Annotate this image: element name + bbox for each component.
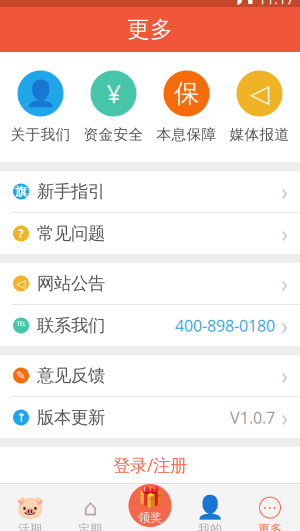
staticText: ◁ [250,79,269,108]
staticText: 新手指引 [37,181,105,202]
staticText: 旗 [15,184,27,199]
button[interactable]: 🐷 [0,488,60,531]
staticText: 关于我们 [10,125,70,143]
staticText: 意见反馈 [37,365,105,386]
staticText: 联系我们 [37,315,105,336]
staticText: › [281,360,288,390]
staticText: 网站公告 [37,273,105,294]
staticText: ▮ [247,0,254,5]
staticText: 👤 [196,495,224,521]
button[interactable]: 登录/注册 [0,447,300,483]
staticText: 版本更新 [37,407,105,428]
staticText: 👤 [24,79,56,108]
button[interactable]: ↑ [0,397,300,438]
button[interactable]: ¥ [77,63,150,150]
staticText: 11:17 [258,0,294,8]
staticText: 保 [174,78,199,109]
staticText: 400-898-0180 [175,315,275,336]
staticText: › [281,218,288,248]
staticText: 领奖 [138,510,162,525]
staticText: › [281,402,288,432]
staticText: 登录/注册 [113,453,187,476]
button[interactable]: ◁ [0,263,300,304]
button[interactable]: 👤 [180,488,240,531]
staticText: V1.0.7 [230,407,275,428]
staticText: 常见问题 [37,223,105,244]
staticText: 更多 [258,522,282,531]
button[interactable]: ? [0,213,300,254]
staticText: ◁ [16,277,25,290]
staticText: 🎁 [137,486,162,509]
staticText: 活期 [18,522,42,531]
staticText: › [281,268,288,298]
staticText: ↑ [16,411,26,424]
staticText: › [281,310,288,340]
staticText: 🐷 [16,495,44,521]
staticText: 定期 [78,522,102,531]
button[interactable]: 🎁 [128,484,171,527]
staticText: 媒体报道 [229,125,289,143]
button[interactable]: 保 [150,63,223,150]
staticText: 资金安全 [83,125,143,143]
staticText: ? [18,225,24,241]
button[interactable]: ◁ [223,63,296,150]
staticText: 我的 [198,522,222,531]
button[interactable]: ⌂ [60,488,120,531]
staticText: ✎ [16,369,26,382]
staticText: ◗ [236,0,243,6]
button[interactable]: 👤 [4,63,77,150]
staticText: ¥ [106,77,120,110]
staticText: ℡ [16,317,25,333]
staticText: 更多 [127,16,173,43]
button[interactable]: ✎ [0,355,300,396]
staticText: ⌂ [83,495,97,520]
button[interactable]: ⋯ [240,488,300,531]
staticText: 本息保障 [156,125,216,143]
staticText: › [281,176,288,206]
button[interactable]: 旗 [0,171,300,212]
button[interactable]: ℡ [0,305,300,346]
staticText: ⋯ [262,499,277,516]
